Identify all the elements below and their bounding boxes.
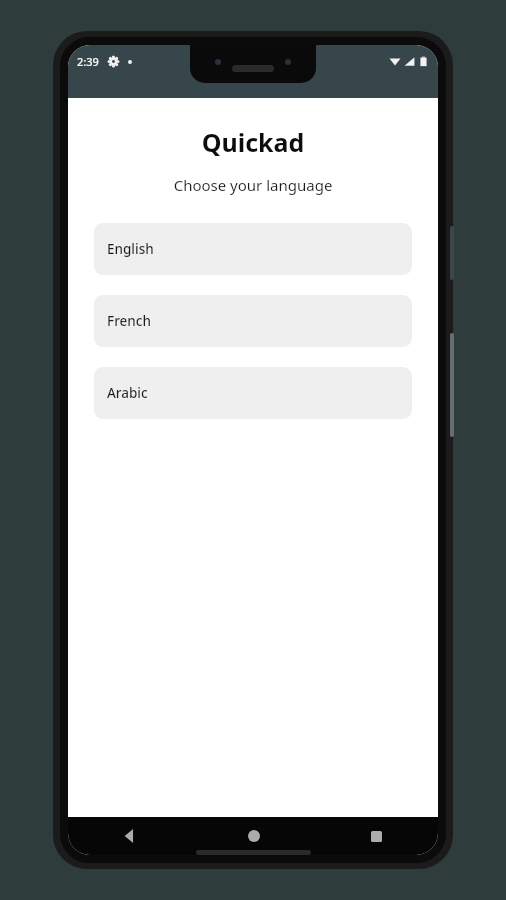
button[interactable]: Arabic [94, 367, 412, 419]
staticText: Arabic [107, 384, 148, 402]
button[interactable]: Home [192, 817, 315, 855]
button[interactable]: Back [68, 817, 192, 855]
button[interactable]: Recent apps [315, 817, 438, 855]
button[interactable]: English [94, 223, 412, 275]
staticText: French [107, 312, 151, 330]
staticText: 2:39 [77, 54, 99, 69]
staticText: English [107, 240, 154, 258]
staticText: Quickad [68, 125, 438, 159]
staticText: Choose your language [68, 175, 438, 195]
button[interactable]: French [94, 295, 412, 347]
